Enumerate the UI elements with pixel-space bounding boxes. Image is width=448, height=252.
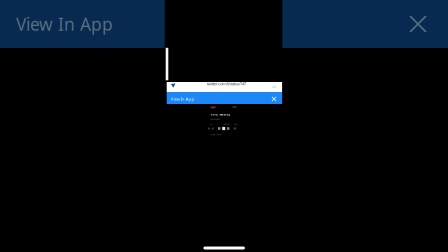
staticText: AA	[272, 85, 276, 89]
staticText: Jane Doe Music	[210, 118, 220, 120]
staticText: 0:14	[210, 123, 213, 125]
staticText: Voice Mashup	[210, 113, 230, 116]
button[interactable]: View In App	[167, 92, 282, 104]
staticText: twitter.com/i/status/147	[207, 81, 246, 86]
staticText: View In App	[170, 96, 194, 102]
button[interactable]: Close	[396, 0, 440, 48]
staticText: View In App	[16, 12, 113, 35]
button[interactable]: View In App	[16, 0, 256, 48]
staticText: Show more	[210, 133, 221, 136]
